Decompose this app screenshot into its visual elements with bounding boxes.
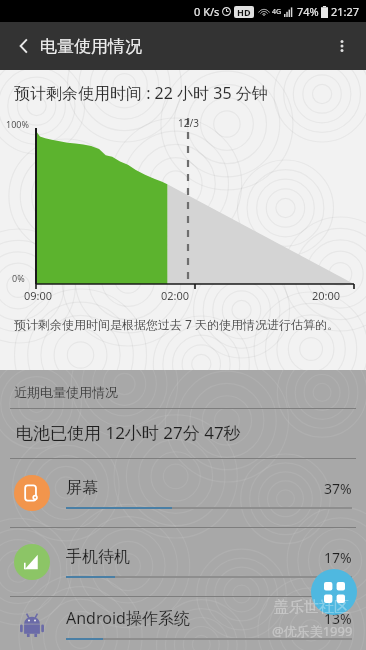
staticText: 37%	[324, 479, 352, 498]
other: Screen	[14, 475, 50, 511]
staticText: 电池已使用 12小时 27分 47秒	[16, 421, 241, 444]
button[interactable]: More options	[318, 22, 366, 70]
button[interactable]: Android OS	[0, 597, 366, 650]
other: Android OS	[14, 606, 50, 642]
staticText: 盖乐世社区	[274, 598, 349, 617]
staticText: 预计剩余使用时间是根据您过去 7 天的使用情况进行估算的。	[14, 316, 340, 332]
staticText: 屏幕	[66, 478, 98, 498]
staticText: 02:00	[161, 288, 190, 303]
staticText: 13%	[324, 609, 352, 628]
staticText: 17%	[324, 548, 352, 567]
staticText: 手机待机	[66, 547, 130, 567]
staticText: 20:00	[312, 288, 341, 303]
staticText: 电量使用情况	[40, 36, 142, 57]
button[interactable]: Screen	[0, 459, 366, 527]
staticText: 21:27	[331, 4, 360, 19]
staticText: HD	[237, 6, 251, 18]
staticText: 09:00	[24, 288, 53, 303]
button[interactable]: Apps	[311, 569, 357, 615]
staticText: Android操作系统	[66, 607, 190, 629]
other: Phone idle	[14, 544, 50, 580]
staticText: 近期电量使用情况	[14, 384, 118, 400]
button[interactable]: Phone idle	[0, 528, 366, 596]
staticText: 12/3	[178, 116, 199, 130]
staticText: @优乐美1999	[272, 622, 353, 640]
staticText: 0 K/s	[194, 4, 220, 19]
staticText: 0%	[12, 272, 25, 284]
staticText: 预计剩余使用时间 : 22 小时 35 分钟	[14, 82, 268, 104]
button[interactable]: Back	[0, 22, 48, 70]
staticText: 4G	[272, 7, 282, 17]
staticText: 100%	[6, 118, 29, 130]
staticText: 74%	[297, 4, 319, 19]
